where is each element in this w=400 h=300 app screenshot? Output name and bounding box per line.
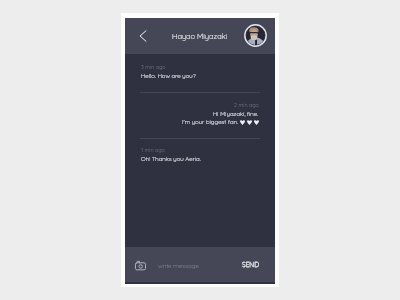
- staticText: SEND: [242, 260, 259, 268]
- button[interactable]: Profile photo: [244, 24, 267, 47]
- staticText: Oh! Thanks you Aeria.: [141, 155, 201, 163]
- staticText: 1 min ago: [141, 147, 165, 154]
- button[interactable]: Attach photo: [135, 261, 146, 270]
- staticText: Hayao Miyazaki: [172, 31, 228, 40]
- staticText: Hi Miyazaki, fine.: [213, 110, 259, 118]
- button[interactable]: SEND: [242, 260, 259, 268]
- staticText: write message: [158, 262, 199, 270]
- button[interactable]: Back: [135, 27, 153, 45]
- staticText: 3 min ago: [141, 64, 166, 71]
- staticText: I'm your biggest fan.: [182, 118, 238, 126]
- staticText: 2 min ago: [234, 102, 259, 109]
- staticText: Hello. How are you?: [141, 72, 196, 80]
